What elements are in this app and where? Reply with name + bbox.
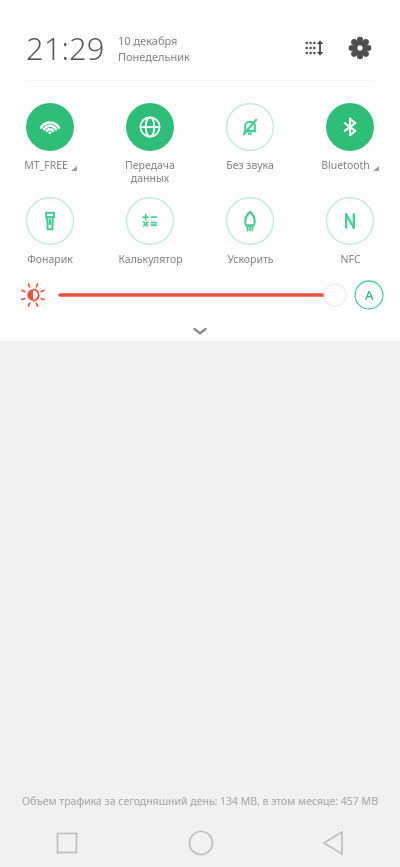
button[interactable]: Без звука — [200, 103, 300, 172]
staticText: A — [365, 286, 374, 304]
staticText: Без звука — [226, 158, 274, 172]
staticText: Понедельник — [118, 49, 190, 64]
button[interactable]: Expand quick settings — [0, 320, 400, 341]
staticText: MT_FREE — [24, 158, 68, 172]
button[interactable]: Фонарик — [0, 197, 100, 266]
staticText: Калькулятор — [118, 252, 183, 266]
staticText: Ускорить — [227, 252, 274, 266]
button[interactable]: Edit tiles — [294, 28, 334, 68]
staticText: 21:29 — [26, 27, 105, 69]
button[interactable]: Передача данных — [100, 103, 200, 185]
button[interactable]: Ускорить — [200, 197, 300, 266]
button[interactable]: Bluetooth — [300, 103, 400, 172]
staticText: NFC — [340, 252, 361, 266]
button[interactable]: Home — [134, 819, 267, 867]
staticText: Объем трафика за сегодняшний день: 134 M… — [22, 794, 378, 808]
staticText: Передача данных — [125, 158, 175, 185]
button[interactable]: NFC — [300, 197, 400, 266]
button[interactable]: Settings — [340, 28, 380, 68]
staticText: 10 декабря — [118, 33, 178, 48]
button[interactable]: Back — [267, 819, 400, 867]
staticText: Фонарик — [27, 252, 73, 266]
button[interactable]: MT_FREE — [0, 103, 100, 172]
staticText: Bluetooth — [321, 158, 370, 172]
button[interactable]: Recent apps — [0, 819, 134, 867]
button[interactable]: Auto brightness — [354, 280, 384, 310]
button[interactable]: Калькулятор — [100, 197, 200, 266]
button[interactable]: Brightness — [58, 280, 346, 310]
